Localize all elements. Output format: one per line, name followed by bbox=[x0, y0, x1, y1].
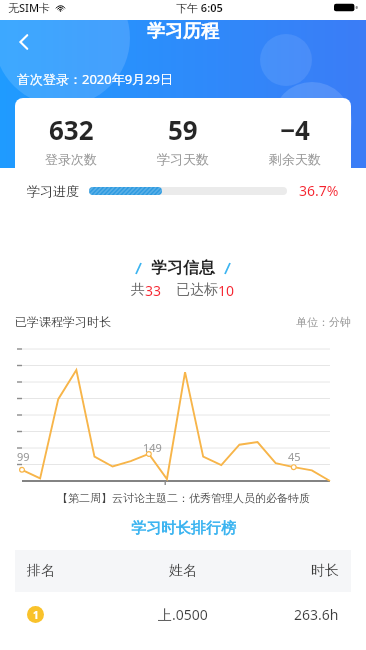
staticText: 无SIM卡 bbox=[8, 0, 51, 15]
staticText: 36.7% bbox=[299, 181, 339, 200]
staticText: 学习天数 bbox=[157, 151, 209, 167]
staticText: 剩余天数 bbox=[269, 151, 321, 167]
staticText: 【第二周】云讨论主题二：优秀管理人员的必备特质 bbox=[57, 491, 310, 505]
staticText: 632 bbox=[49, 112, 94, 147]
staticText: 99 bbox=[17, 449, 30, 464]
staticText: 登录次数 bbox=[45, 151, 97, 167]
staticText: 时长 bbox=[311, 562, 339, 580]
staticText: 首次登录：2020年9月29日 bbox=[17, 70, 174, 88]
staticText: 学习时长排行榜 bbox=[131, 519, 236, 538]
staticText: 1 bbox=[33, 608, 39, 622]
staticText: 已学课程学习时长 bbox=[15, 314, 111, 329]
staticText: 59 bbox=[168, 112, 198, 147]
staticText: 学习进度 bbox=[27, 183, 79, 199]
staticText: 10 bbox=[218, 281, 235, 300]
staticText: 下午 6:05 bbox=[176, 0, 223, 15]
staticText: −4 bbox=[280, 112, 310, 147]
staticText: 33 bbox=[145, 281, 162, 300]
staticText: 学习历程 bbox=[147, 20, 219, 43]
staticText: 学习信息 bbox=[151, 258, 215, 278]
staticText: 45 bbox=[288, 449, 301, 464]
staticText: 姓名 bbox=[169, 562, 197, 580]
staticText: 上.0500 bbox=[158, 605, 208, 624]
staticText: 单位：分钟 bbox=[296, 315, 351, 329]
staticText: 149 bbox=[143, 440, 162, 455]
staticText: 已达标 bbox=[176, 281, 218, 299]
button[interactable]: 632 bbox=[15, 98, 351, 240]
staticText: 共 bbox=[131, 281, 145, 299]
staticText: 排名 bbox=[27, 562, 55, 580]
button[interactable]: 返回 bbox=[4, 22, 44, 62]
button[interactable]: 1 bbox=[15, 592, 351, 636]
staticText: 263.6h bbox=[294, 605, 339, 624]
